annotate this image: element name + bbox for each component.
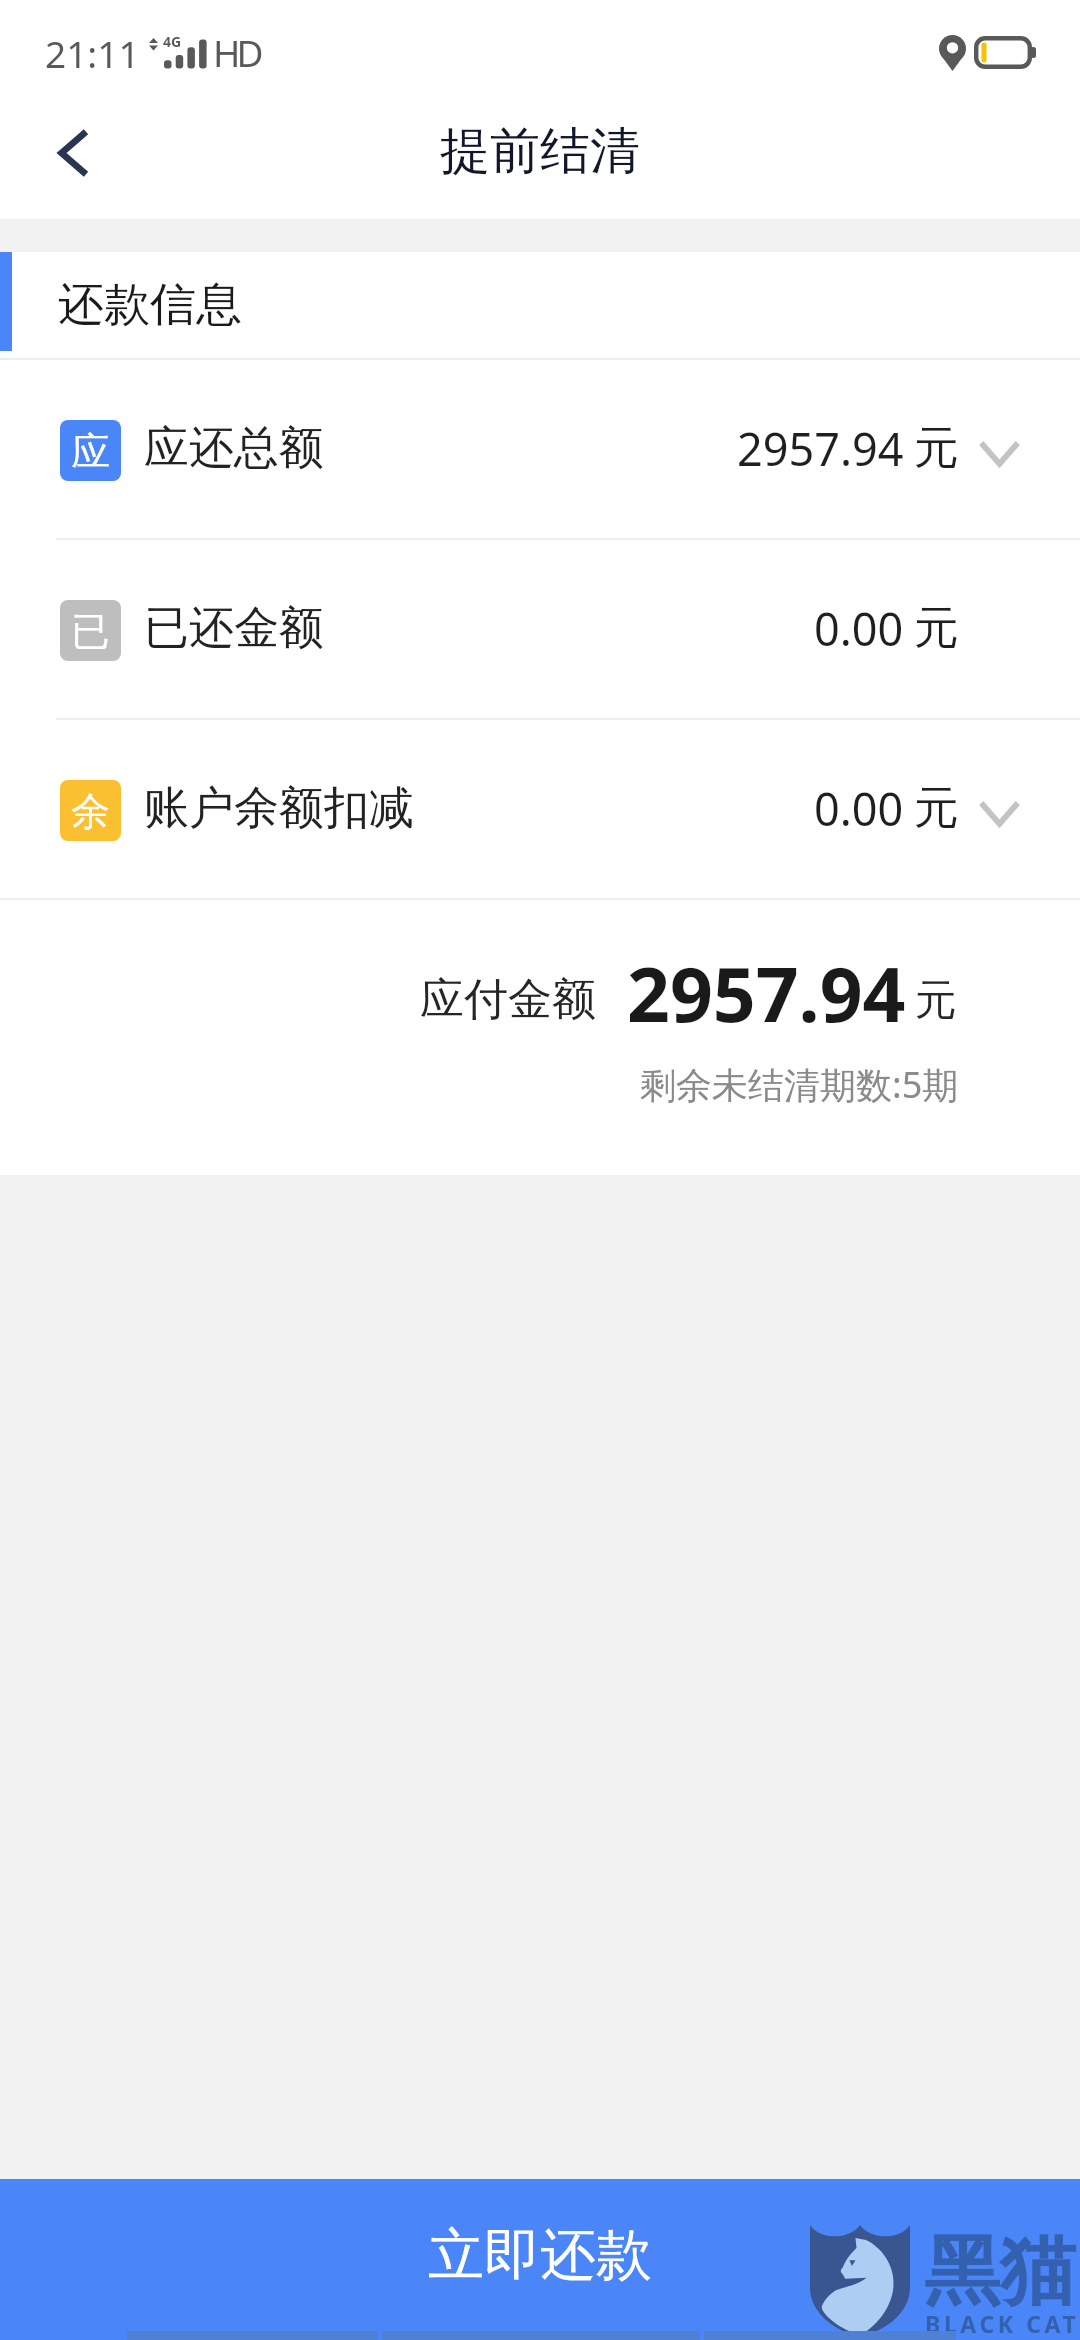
button[interactable]: 立即还款 [0, 2179, 1080, 2340]
staticText: 2957.94 [737, 418, 904, 479]
staticText: 元 [914, 600, 959, 657]
staticText: 0.00 [814, 778, 904, 839]
staticText: 余 [71, 787, 110, 836]
staticText: HD [213, 27, 260, 77]
staticText: 黑猫 [924, 2224, 1076, 2320]
staticText: 元 [915, 974, 957, 1027]
staticText: 立即还款 [428, 2220, 652, 2291]
button[interactable]: Back [0, 110, 140, 219]
staticText: 提前结清 [440, 120, 640, 183]
staticText: 应付金额 [420, 972, 596, 1027]
staticText: 账户余额扣减 [144, 780, 414, 837]
staticText: BLACK CAT [925, 2308, 1080, 2339]
button[interactable]: 余 [0, 720, 1080, 900]
staticText: 还款信息 [58, 276, 242, 334]
button[interactable]: 应 [0, 360, 1080, 540]
staticText: 0.00 [814, 598, 904, 659]
staticText: 2957.94 [627, 942, 906, 1044]
other: Location [939, 35, 966, 71]
staticText: 应 [71, 427, 110, 476]
staticText: 已 [71, 607, 110, 656]
button[interactable]: 已 [0, 540, 1080, 720]
staticText: 4G [163, 32, 182, 51]
staticText: 元 [914, 420, 959, 477]
staticText: 元 [914, 780, 959, 837]
other: Battery [974, 36, 1036, 69]
staticText: 应还总额 [144, 420, 324, 477]
staticText: 21:11 [45, 28, 140, 78]
staticText: 已还金额 [144, 600, 324, 657]
staticText: 剩余未结清期数:5期 [640, 1060, 959, 1109]
